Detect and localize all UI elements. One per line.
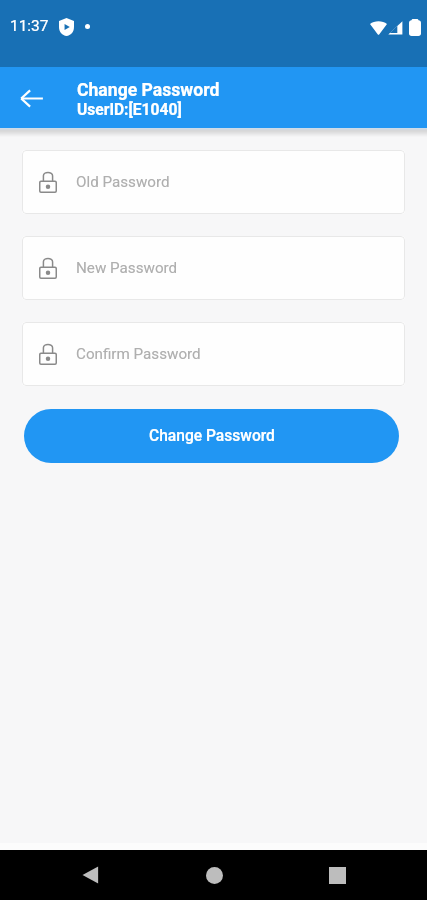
button[interactable]: Change Password [24,409,399,463]
staticText: 11:37 [10,17,49,35]
button[interactable]: New Password [22,236,405,300]
button[interactable]: Home [194,855,234,895]
staticText: Change Password [149,427,275,445]
staticText: UserID:[E1040] [77,101,182,119]
staticText: Old Password [76,173,170,191]
button[interactable]: Old Password [22,150,405,214]
button[interactable]: Recents [317,855,357,895]
staticText: Confirm Password [76,345,201,363]
staticText: New Password [76,259,178,277]
button[interactable]: Back [70,855,110,895]
button[interactable]: Back [12,78,52,118]
button[interactable]: Confirm Password [22,322,405,386]
staticText: Change Password [77,80,220,101]
